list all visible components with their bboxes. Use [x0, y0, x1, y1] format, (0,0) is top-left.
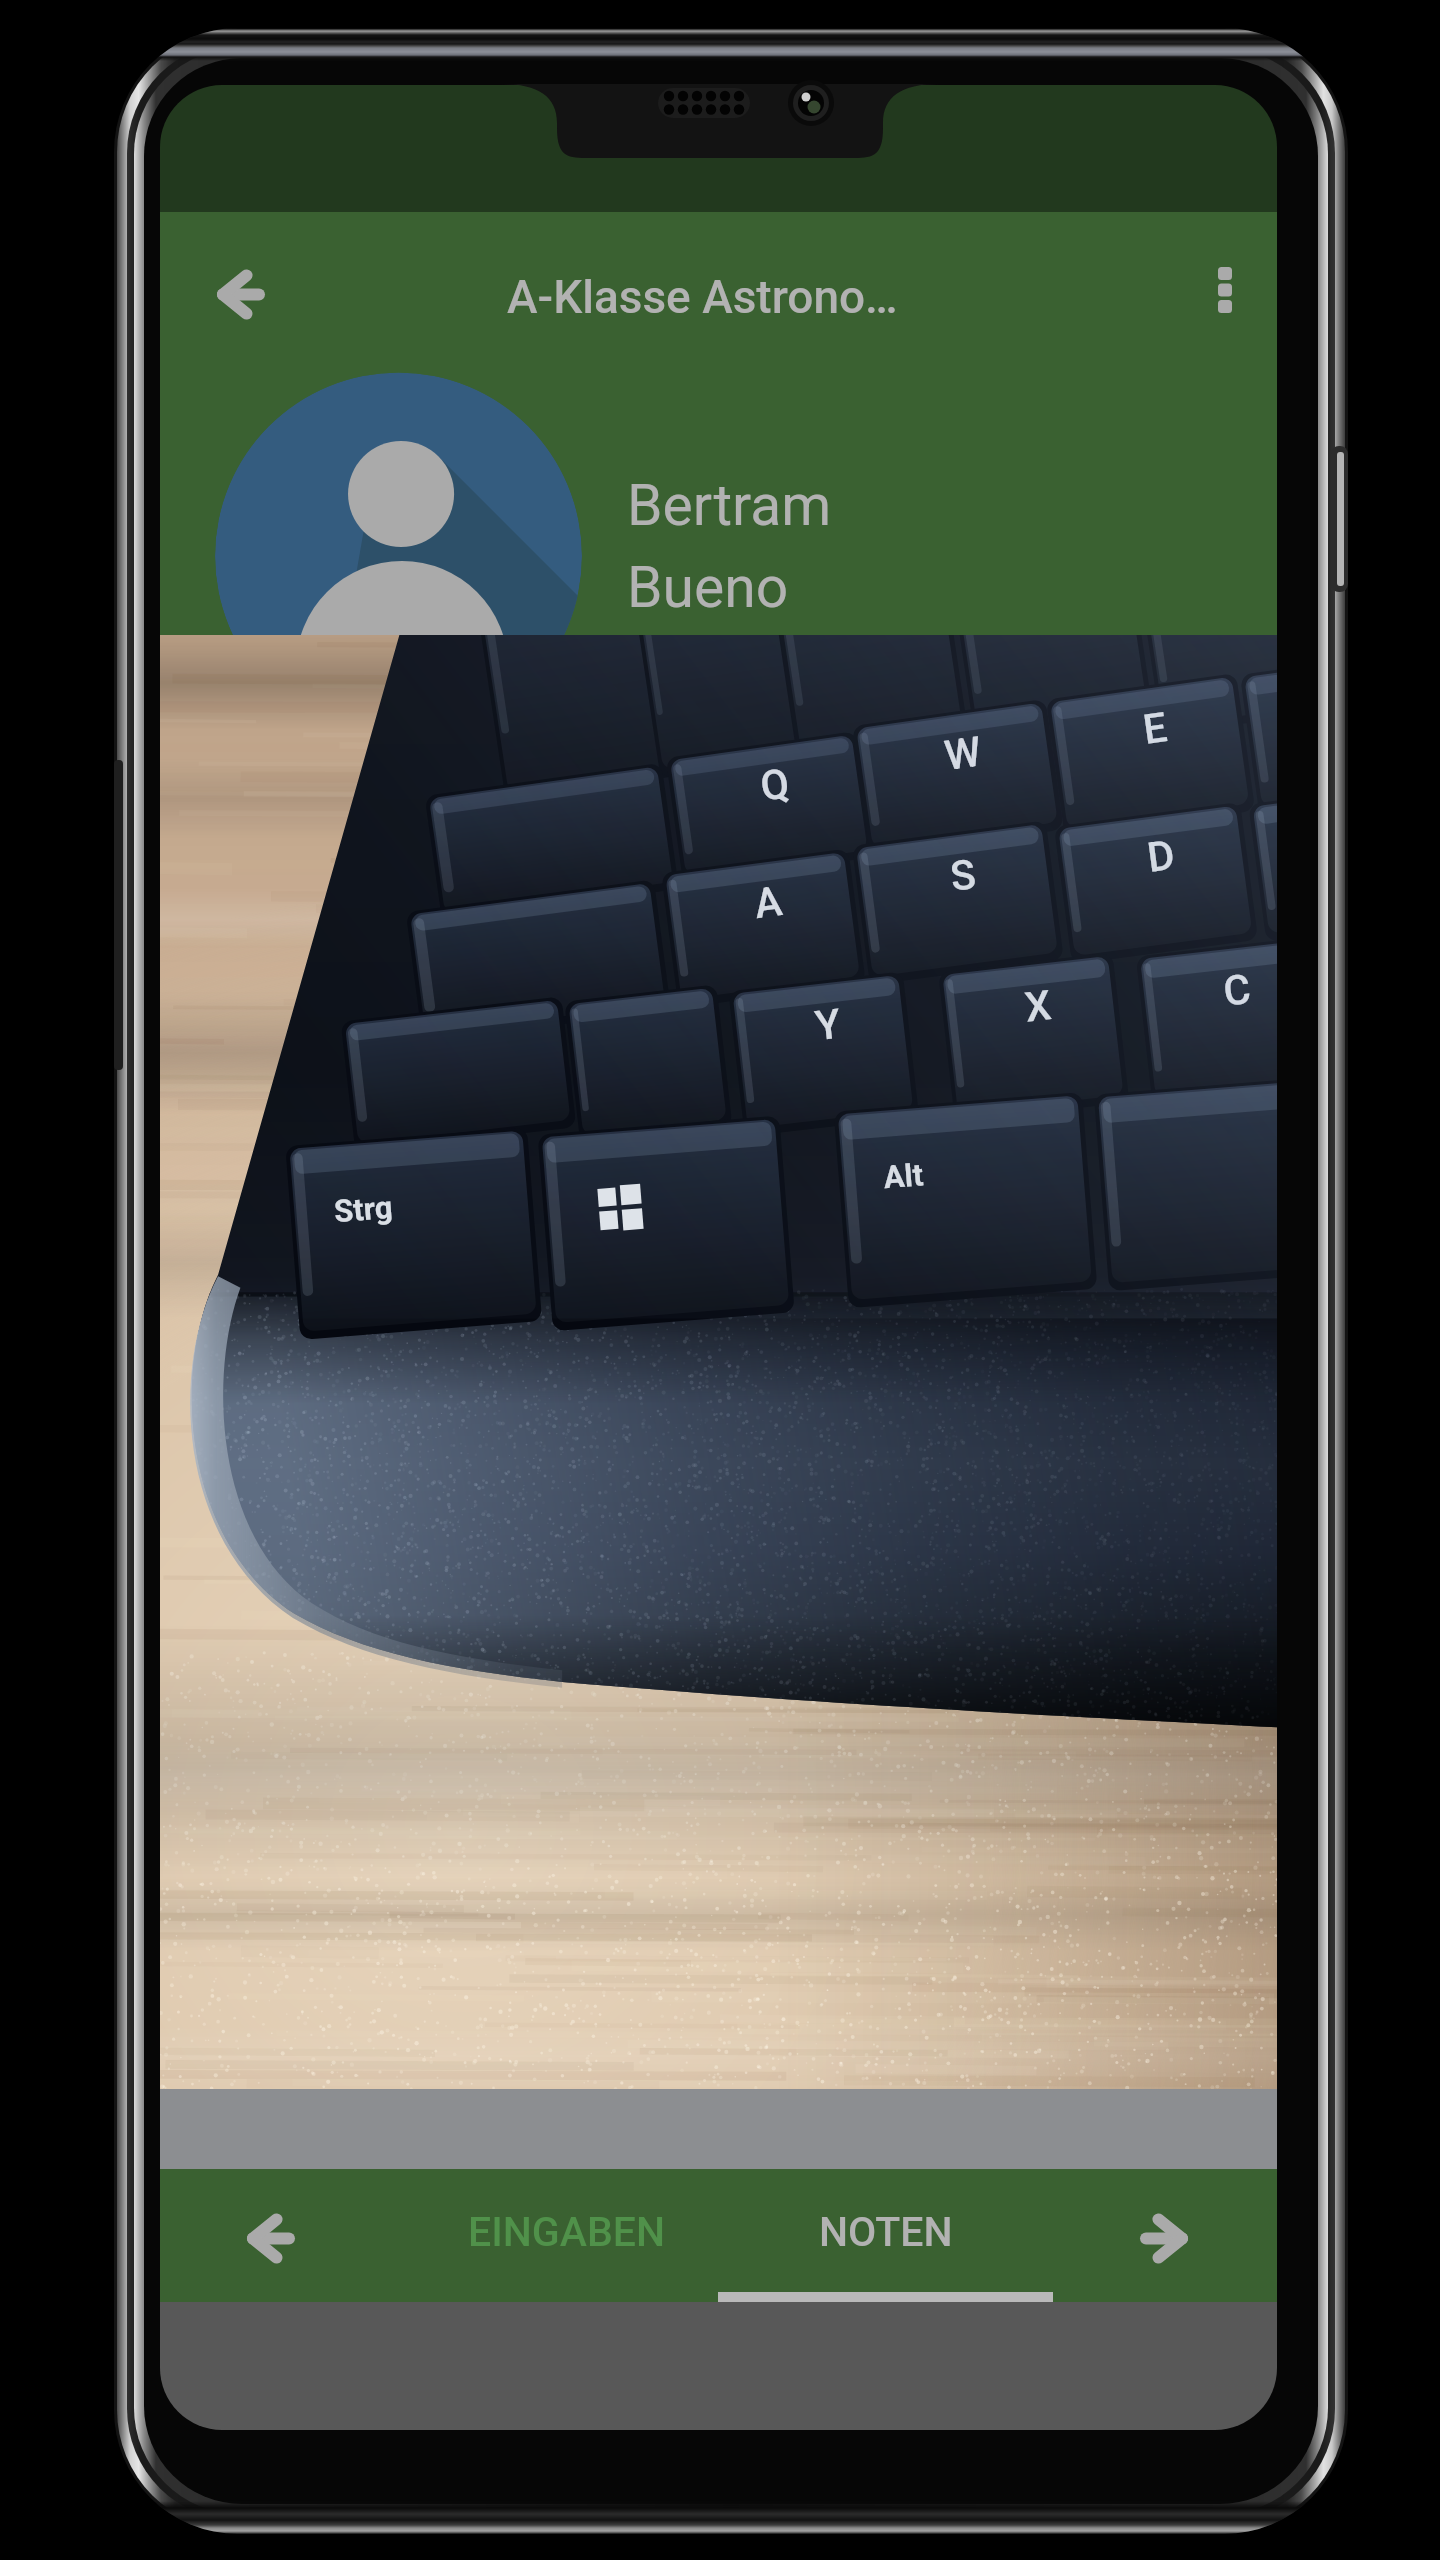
staticText: Bueno: [627, 554, 789, 621]
button[interactable]: Previous tab: [223, 2190, 319, 2286]
staticText: A-Klasse Astrono…: [507, 270, 898, 324]
staticText: Bertram: [627, 472, 832, 539]
staticText: NOTEN: [819, 2208, 953, 2256]
button[interactable]: NOTEN: [718, 2169, 1053, 2302]
button[interactable]: More options: [1177, 242, 1273, 338]
button[interactable]: Back: [193, 246, 289, 342]
staticText: EINGABEN: [468, 2208, 666, 2256]
button[interactable]: EINGABEN: [383, 2169, 751, 2302]
button[interactable]: Next tab: [1116, 2190, 1212, 2286]
